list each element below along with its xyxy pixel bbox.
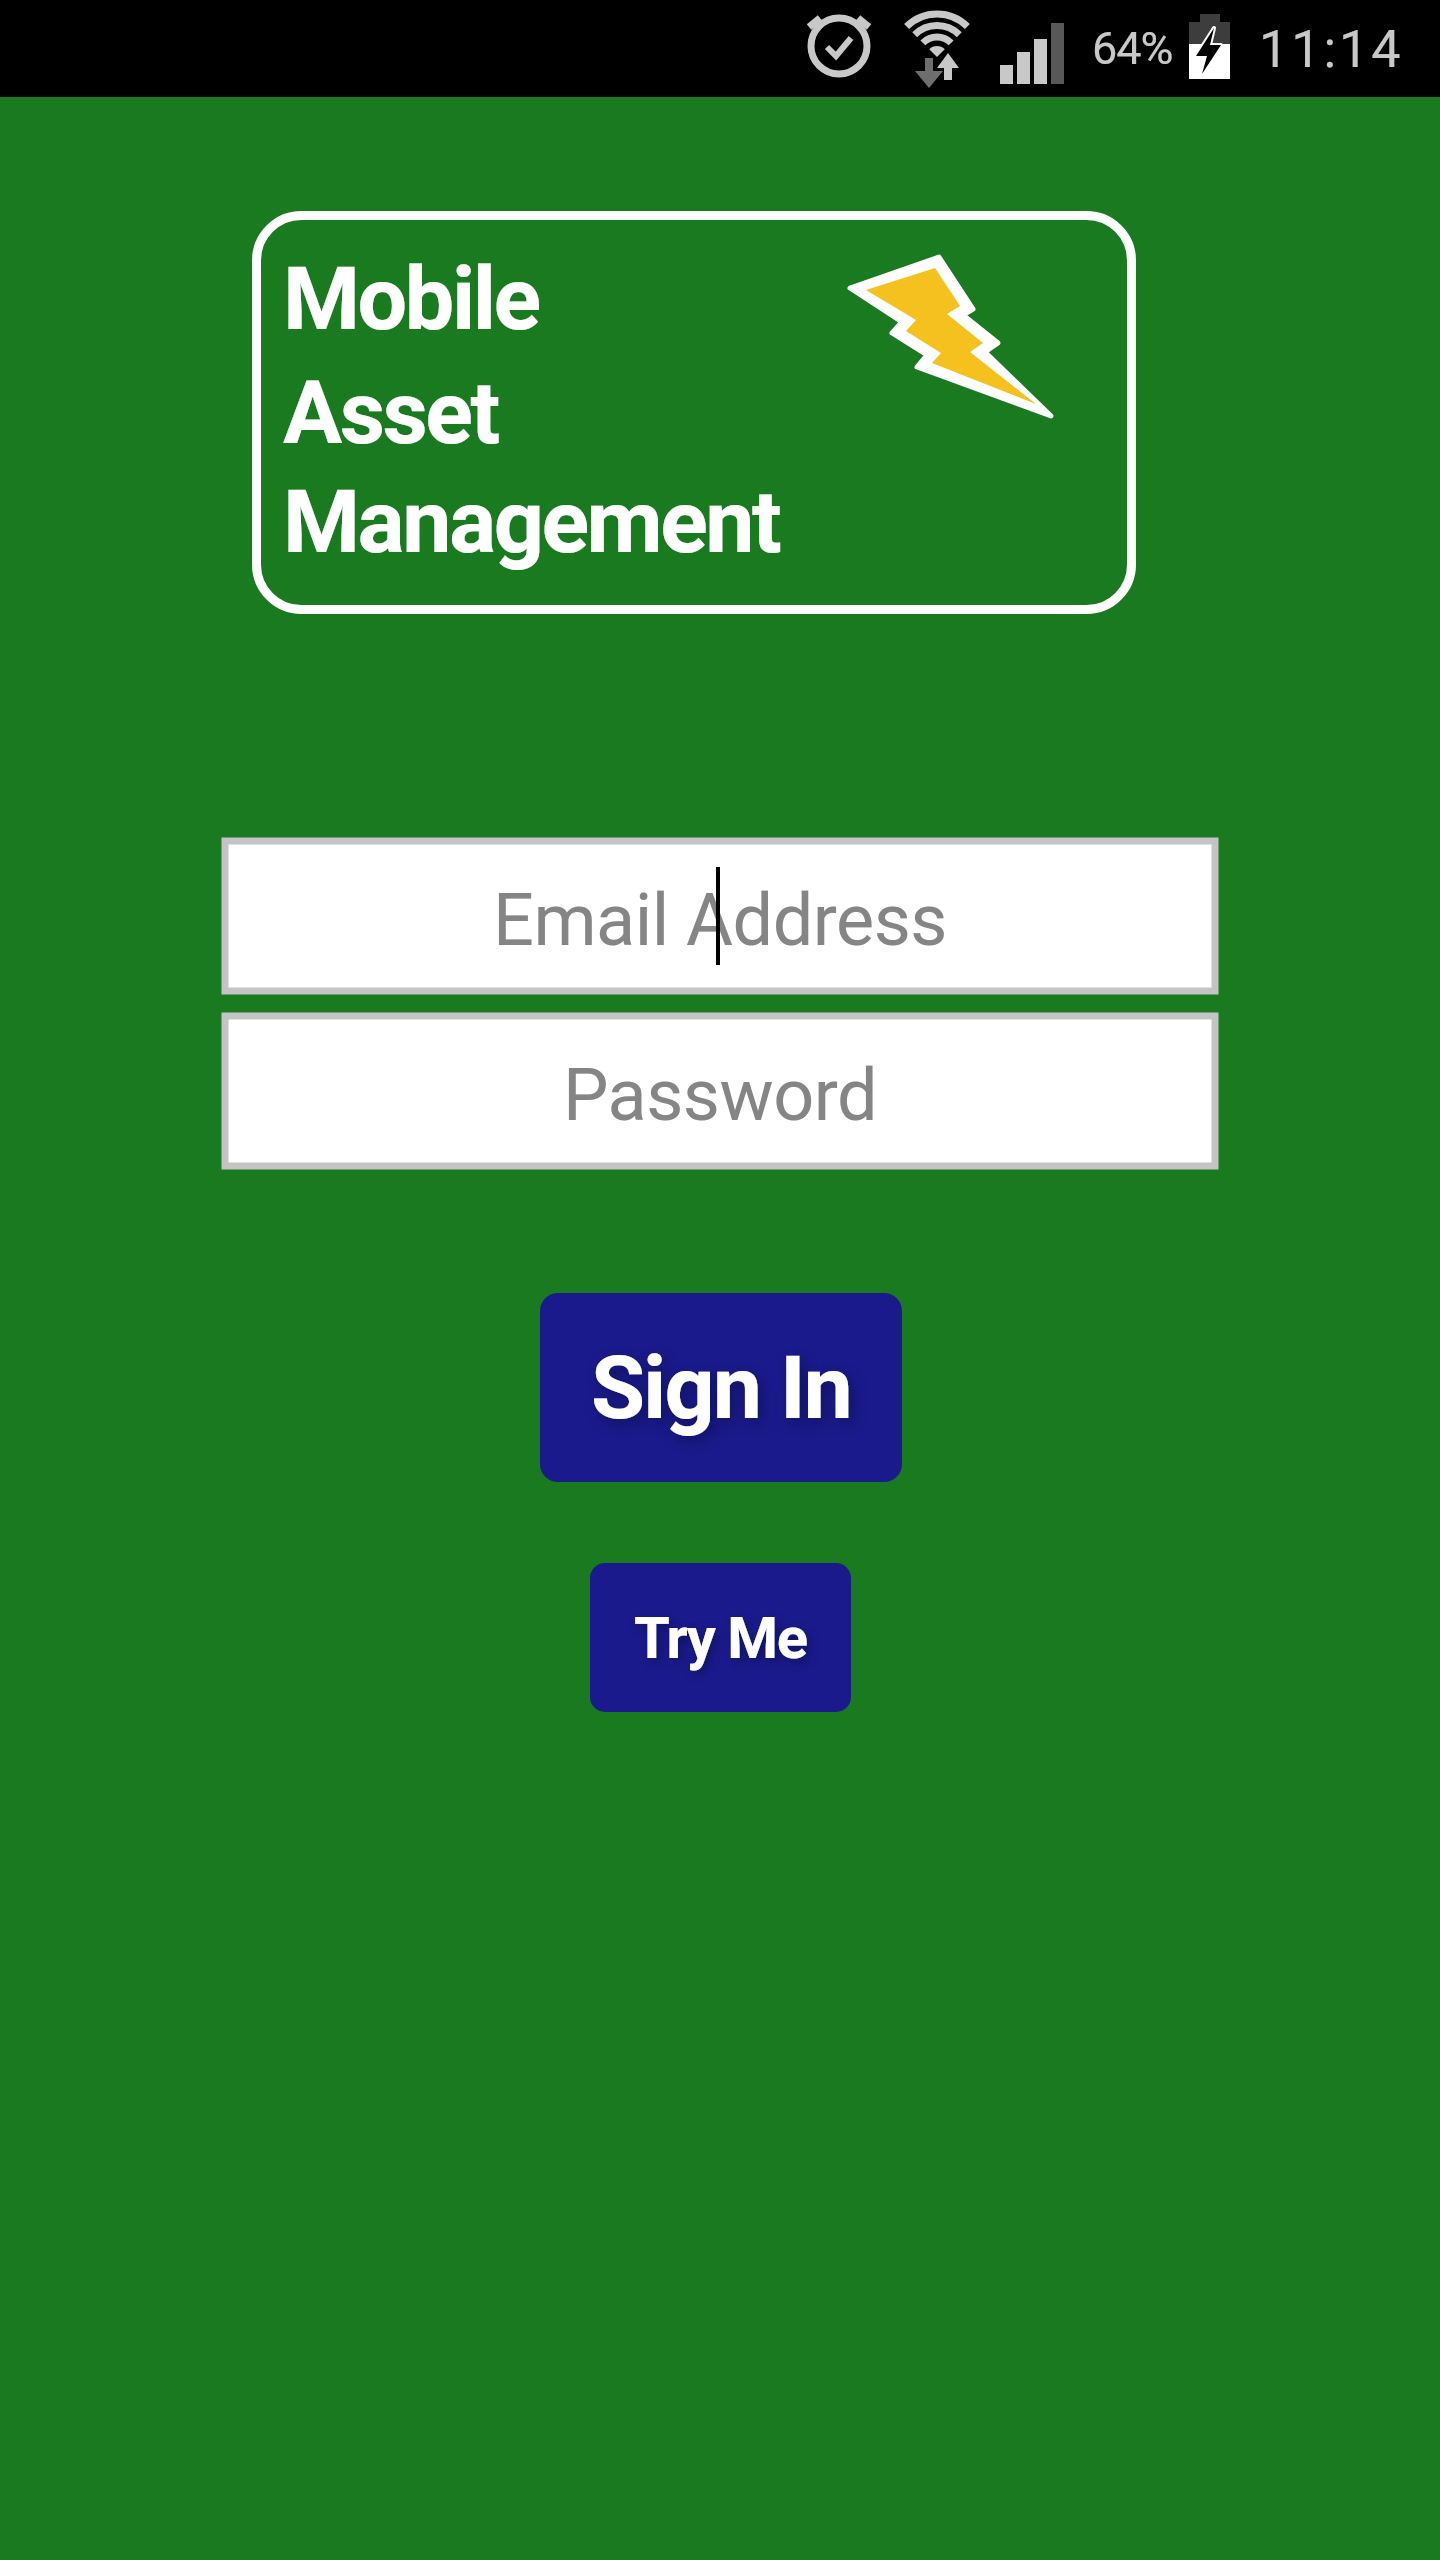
button[interactable]: Password: [225, 1016, 1215, 1166]
staticText: Sign In: [591, 1336, 851, 1439]
staticText: Try Me: [634, 1604, 807, 1672]
staticText: Password: [563, 1053, 878, 1137]
button[interactable]: Sign In: [540, 1293, 902, 1482]
button[interactable]: Try Me: [590, 1563, 851, 1712]
staticText: Email Address: [493, 878, 948, 962]
staticText: 64%: [1092, 22, 1173, 75]
button[interactable]: Email Address: [225, 841, 1215, 991]
staticText: Asset: [283, 361, 498, 464]
staticText: Management: [283, 470, 780, 573]
staticText: 11:14: [1259, 19, 1404, 80]
staticText: Mobile: [283, 247, 539, 350]
